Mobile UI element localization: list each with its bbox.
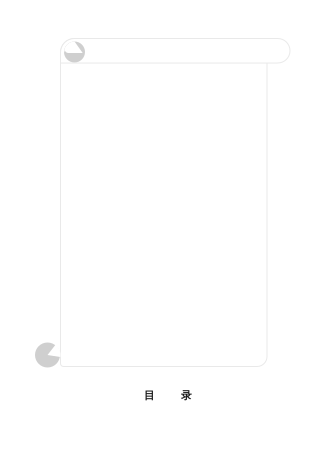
button[interactable]: 目 [144, 389, 192, 402]
button[interactable]: Search [0, 0, 320, 453]
staticText: 目 [144, 389, 155, 402]
staticText: 录 [181, 389, 192, 402]
